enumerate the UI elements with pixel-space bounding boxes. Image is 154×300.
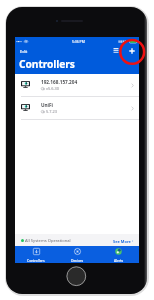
staticText: Edit — [20, 49, 28, 54]
button[interactable]: Add — [128, 47, 136, 55]
staticText: See More — [113, 239, 131, 244]
staticText: Controllers — [19, 57, 75, 71]
button[interactable]: Devices — [57, 246, 98, 263]
staticText: v5.6.30 — [46, 86, 59, 91]
button[interactable]: Controllers — [15, 246, 57, 263]
staticText: UniFi — [41, 102, 53, 108]
button[interactable]: Alerts — [98, 246, 139, 263]
button[interactable]: UniFi — [15, 97, 139, 119]
staticText: 5.7.23 — [46, 109, 57, 114]
staticText: › — [132, 238, 134, 244]
button[interactable]: 192.168.157.204 — [15, 74, 139, 96]
staticText: Alerts — [114, 258, 124, 263]
staticText: 5:36 PM — [72, 39, 85, 44]
button[interactable]: Sort — [113, 47, 119, 54]
button[interactable]: Edit — [18, 47, 30, 55]
staticText: All Systems Operational — [25, 238, 71, 244]
staticText: Devices — [71, 258, 84, 263]
staticText: 192.168.157.204 — [41, 79, 78, 85]
staticText: Controllers — [27, 258, 45, 263]
button[interactable]: See More — [113, 238, 134, 244]
